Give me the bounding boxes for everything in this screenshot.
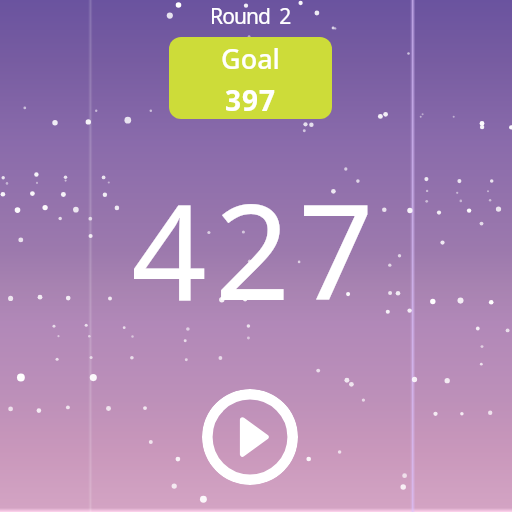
button[interactable]: Goal xyxy=(169,37,332,119)
button[interactable]: Play xyxy=(202,389,298,485)
staticText: 397 xyxy=(225,81,277,119)
staticText: 427 xyxy=(131,159,382,339)
staticText: Round 2 xyxy=(210,2,291,31)
staticText: Goal xyxy=(221,40,280,77)
